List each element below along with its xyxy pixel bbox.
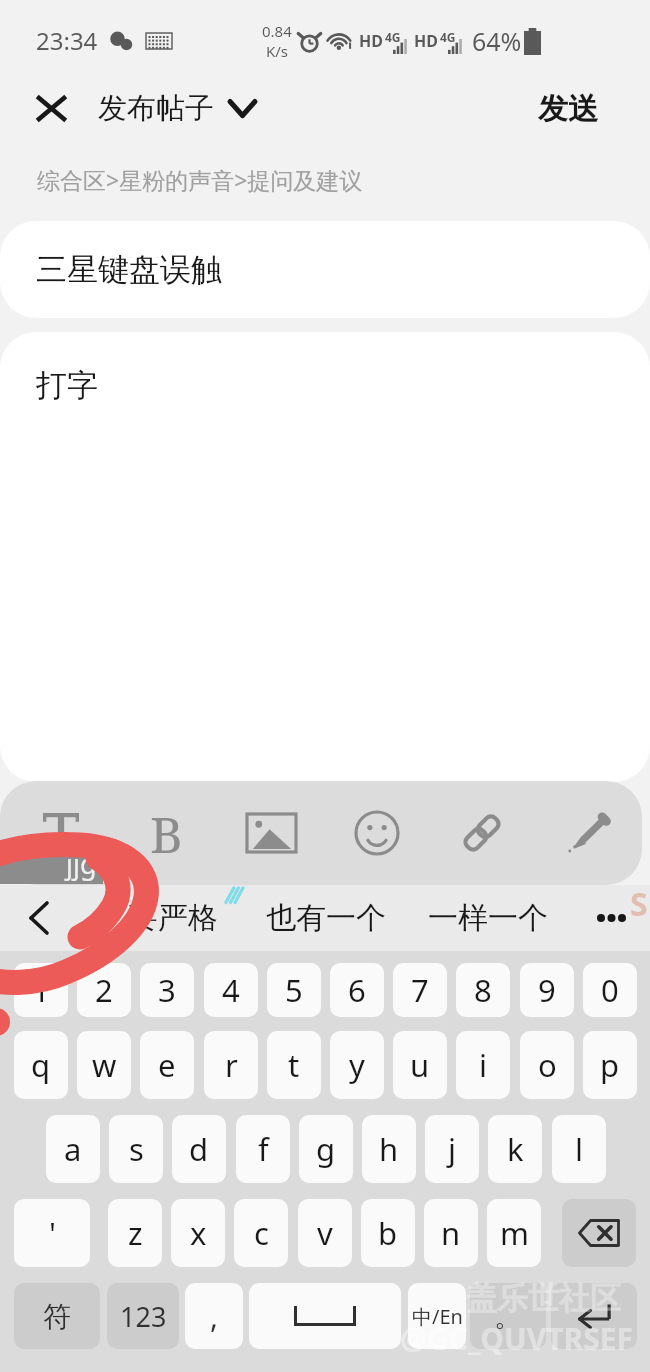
staticText: ' [49,1212,56,1254]
button[interactable]: c [234,1199,288,1267]
staticText: t [288,1044,300,1086]
button[interactable]: 6 [330,963,384,1017]
button[interactable]: q [14,1031,68,1099]
staticText: z [128,1212,143,1254]
staticText: 3 [158,969,176,1011]
button[interactable]: 0 [583,963,637,1017]
button[interactable]: o [520,1031,574,1099]
staticText: y [349,1044,365,1086]
button[interactable]: g [299,1115,353,1183]
button[interactable]: Backspace [562,1199,636,1267]
staticText: 7 [411,969,429,1011]
staticText: w [92,1044,117,1086]
button[interactable]: j [425,1115,479,1183]
button[interactable]: Close [22,80,80,136]
staticText: 发布帖子 [98,90,214,127]
button[interactable]: Draw [554,800,620,866]
button[interactable]: s [109,1115,163,1183]
button[interactable]: Enter [551,1283,637,1349]
staticText: 一样一个 [428,899,548,937]
button[interactable]: 8 [456,963,510,1017]
button[interactable]: 中/En [408,1283,466,1349]
button[interactable]: h [362,1115,416,1183]
button[interactable]: l [552,1115,606,1183]
button[interactable]: n [424,1199,478,1267]
button[interactable]: 7 [393,963,447,1017]
button[interactable]: Previous page [0,885,78,951]
staticText: o [538,1044,557,1086]
button[interactable]: 三星键盘误触 [0,221,650,318]
button[interactable]: Space [249,1283,401,1349]
button[interactable]: 发送 [524,80,612,136]
button[interactable]: p [583,1031,637,1099]
staticText: r [225,1044,238,1086]
staticText: p [600,1044,620,1086]
staticText: 打字 [36,366,98,405]
button[interactable]: r [204,1031,258,1099]
button[interactable]: m [487,1199,541,1267]
staticText: 8 [474,969,492,1011]
button[interactable]: 发布帖子 [92,80,263,136]
staticText: 三星键盘误触 [36,250,222,289]
staticText: e [158,1044,176,1086]
button[interactable]: Insert link [449,800,515,866]
button[interactable]: i [456,1031,510,1099]
staticText: g [316,1128,336,1170]
button[interactable]: b [361,1199,415,1267]
button[interactable]: v [298,1199,352,1267]
button[interactable]: k [488,1115,542,1183]
staticText: s [129,1128,144,1170]
staticText: 4G [440,29,456,45]
button[interactable]: 2 [77,963,131,1017]
button[interactable]: , [185,1283,243,1349]
button[interactable]: u [393,1031,447,1099]
staticText: 中/En [412,1303,463,1330]
staticText: 。 [494,1299,522,1334]
button[interactable]: 。 [470,1283,546,1349]
button[interactable]: 符 [14,1283,100,1349]
button[interactable]: e [140,1031,194,1099]
button[interactable]: More candidates [575,885,647,951]
staticText: S [630,882,648,926]
button[interactable]: z [108,1199,162,1267]
staticText: 综合区>星粉的声音>提问及建议 [37,164,363,195]
button[interactable]: Insert image [238,800,304,866]
staticText: 9 [538,969,556,1011]
button[interactable]: x [171,1199,225,1267]
button[interactable]: d [172,1115,226,1183]
staticText: c [254,1212,269,1254]
button[interactable]: a [46,1115,100,1183]
button[interactable]: 1 [14,963,68,1017]
button[interactable]: 123 [107,1283,179,1349]
button[interactable]: t [267,1031,321,1099]
staticText: d [189,1128,209,1170]
staticText: u [410,1044,430,1086]
button[interactable]: 3 [140,963,194,1017]
button[interactable]: Bold [133,800,199,866]
staticText: 要严格 [128,899,218,937]
button[interactable]: 打字 [0,332,650,782]
button[interactable]: y [330,1031,384,1099]
staticText: j [448,1128,456,1170]
staticText: 发送 [538,90,598,126]
button[interactable]: Text style [28,800,94,866]
button[interactable]: 要严格 [110,885,235,951]
staticText: 1 [32,969,50,1011]
staticText: f [258,1128,269,1170]
staticText: a [64,1128,82,1170]
button[interactable]: 9 [520,963,574,1017]
staticText: 0 [601,969,619,1011]
staticText: K/s [266,41,289,61]
button[interactable]: 4 [204,963,258,1017]
button[interactable]: w [77,1031,131,1099]
button[interactable]: Insert emoji [344,800,410,866]
staticText: k [507,1128,524,1170]
button[interactable]: 综合区>星粉的声音>提问及建议 [0,149,650,209]
staticText: 5 [285,969,303,1011]
button[interactable]: f [236,1115,290,1183]
button[interactable]: 一样一个 [427,885,549,951]
button[interactable]: ' [14,1199,90,1267]
button[interactable]: 5 [267,963,321,1017]
button[interactable]: jjg [0,842,103,884]
button[interactable]: 也有一个 [265,885,387,951]
